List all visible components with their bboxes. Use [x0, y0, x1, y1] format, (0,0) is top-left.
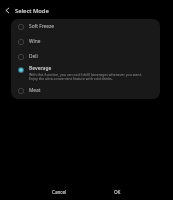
staticText: Cancel [52, 189, 67, 195]
staticText: Meat [29, 87, 41, 94]
staticText: Wine [29, 38, 41, 45]
staticText: With this function, you can cool (chill)… [29, 72, 146, 81]
button[interactable]: OK [88, 183, 147, 200]
button[interactable]: Soft Freeze [11, 19, 160, 34]
button[interactable]: Wine [11, 34, 160, 49]
staticText: OK [114, 189, 121, 195]
button[interactable]: Deli [11, 49, 160, 64]
button[interactable]: Meat [11, 83, 160, 98]
staticText: Deli [29, 53, 38, 60]
staticText: Soft Freeze [29, 23, 54, 30]
button[interactable]: Beverage [11, 64, 160, 83]
staticText: Select Mode [15, 7, 49, 15]
staticText: Beverage [29, 65, 52, 72]
button[interactable]: Back [0, 0, 15, 21]
button[interactable]: Cancel [30, 183, 88, 200]
